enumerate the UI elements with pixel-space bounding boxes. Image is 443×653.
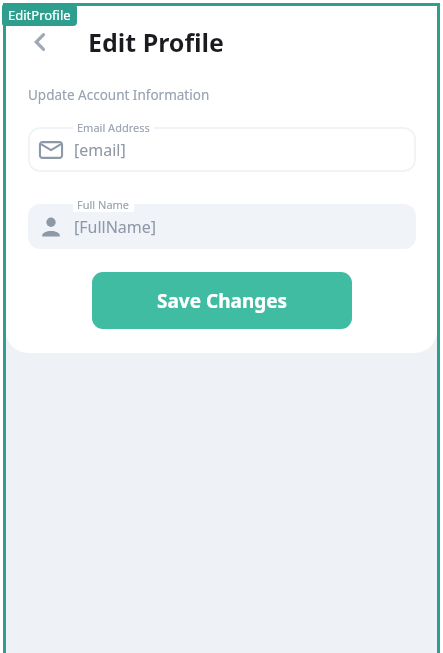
staticText: [FullName] (74, 216, 157, 238)
button[interactable]: [email] (28, 127, 416, 172)
staticText: Email Address (77, 120, 150, 135)
staticText: Save Changes (157, 288, 288, 314)
staticText: [email] (74, 139, 126, 161)
staticText: Update Account Information (28, 86, 210, 104)
button[interactable]: [FullName] (28, 204, 416, 249)
button[interactable]: Back (20, 22, 60, 62)
staticText: Edit Profile (88, 25, 224, 59)
button[interactable]: Save Changes (92, 272, 352, 329)
staticText: EditProfile (8, 6, 71, 24)
staticText: Full Name (77, 197, 130, 212)
